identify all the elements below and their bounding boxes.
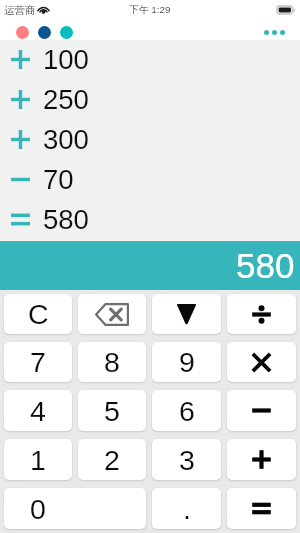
button[interactable]: 0: [4, 488, 146, 529]
button[interactable]: Coral theme: [16, 26, 29, 39]
staticText: 580: [236, 246, 295, 285]
button[interactable]: 7: [4, 342, 72, 382]
staticText: 2: [104, 444, 120, 476]
button[interactable]: 580: [0, 199, 300, 239]
staticText: 运营商: [4, 4, 36, 17]
button[interactable]: More options: [251, 24, 300, 40]
button[interactable]: 70: [0, 159, 300, 199]
button[interactable]: 250: [0, 79, 300, 119]
staticText: 0: [30, 493, 46, 525]
button[interactable]: Collapse keypad: [152, 294, 221, 334]
staticText: .: [183, 493, 191, 525]
button[interactable]: 3: [152, 439, 221, 480]
button[interactable]: 100: [0, 39, 300, 79]
staticText: 100: [43, 44, 89, 75]
staticText: 7: [30, 346, 46, 378]
staticText: 9: [179, 346, 195, 378]
button[interactable]: [227, 294, 296, 334]
button[interactable]: 300: [0, 119, 300, 159]
staticText: 3: [179, 444, 195, 476]
button[interactable]: .: [152, 488, 221, 529]
button[interactable]: [227, 342, 296, 382]
button[interactable]: [227, 390, 296, 431]
button[interactable]: Delete: [78, 294, 146, 334]
button[interactable]: Teal theme: [60, 26, 73, 39]
button[interactable]: C: [4, 294, 72, 334]
staticText: 580: [43, 204, 89, 235]
button[interactable]: Blue theme: [38, 26, 51, 39]
staticText: 70: [43, 164, 74, 195]
staticText: C: [28, 298, 49, 330]
button[interactable]: 6: [152, 390, 221, 431]
button[interactable]: 5: [78, 390, 146, 431]
button[interactable]: 9: [152, 342, 221, 382]
staticText: 1: [30, 444, 46, 476]
button[interactable]: 1: [4, 439, 72, 480]
staticText: 下午 1:29: [129, 4, 171, 16]
button[interactable]: 8: [78, 342, 146, 382]
staticText: 8: [104, 346, 120, 378]
staticText: 300: [43, 124, 89, 155]
button[interactable]: [227, 439, 296, 480]
other: Delete: [95, 303, 129, 326]
staticText: 4: [30, 395, 46, 427]
button[interactable]: 4: [4, 390, 72, 431]
button[interactable]: [227, 488, 296, 529]
staticText: 250: [43, 84, 89, 115]
staticText: 6: [179, 395, 195, 427]
other: Collapse keypad: [176, 304, 197, 325]
staticText: 5: [104, 395, 120, 427]
button[interactable]: 2: [78, 439, 146, 480]
